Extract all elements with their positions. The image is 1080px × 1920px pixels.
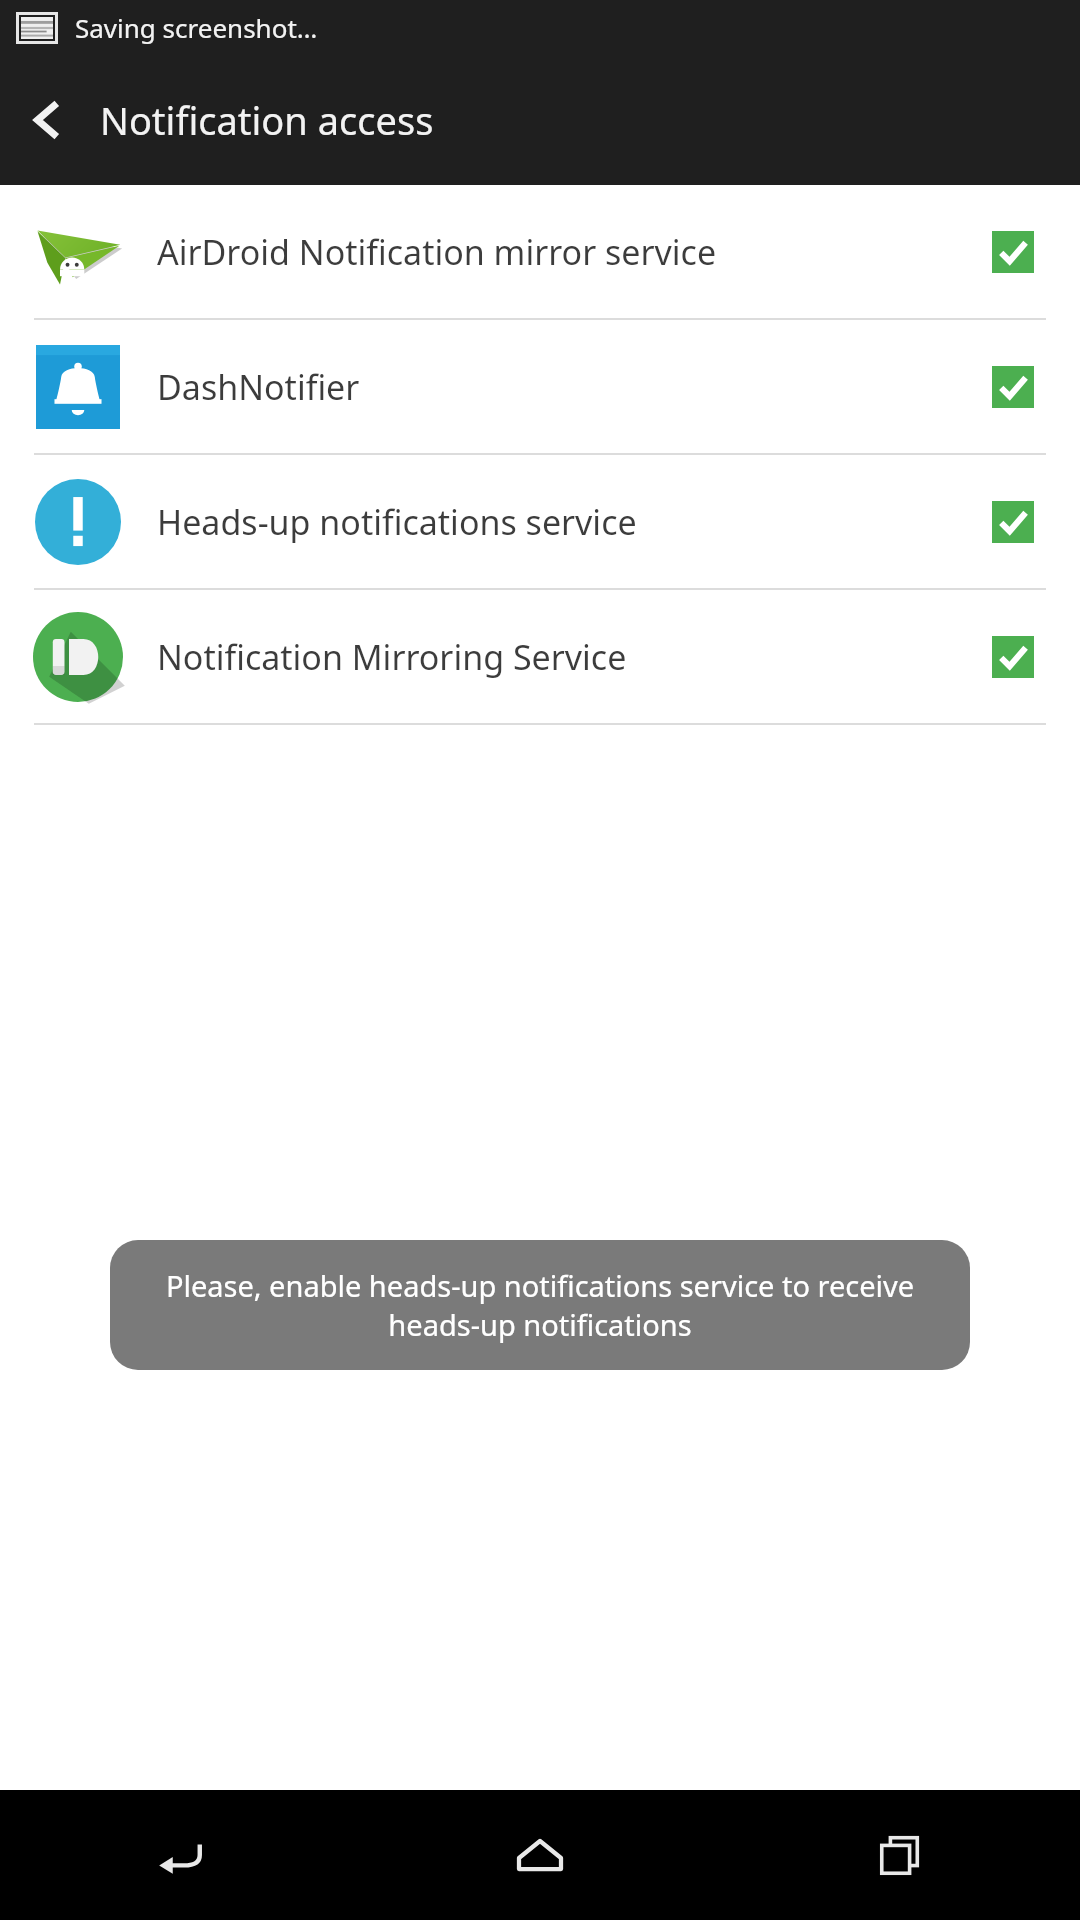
staticText: Please, enable heads-up notifications se… — [150, 1266, 930, 1344]
button[interactable]: Enabled — [992, 636, 1034, 678]
staticText: AirDroid Notification mirror service — [157, 229, 992, 275]
staticText: Saving screenshot… — [75, 10, 318, 45]
button[interactable]: Home — [360, 1790, 720, 1920]
button[interactable]: Notification Mirroring Service — [0, 590, 1080, 723]
button[interactable]: Enabled — [992, 231, 1034, 273]
button[interactable]: Back — [0, 72, 96, 168]
button[interactable]: Heads-up notifications service — [0, 455, 1080, 588]
staticText: Notification access — [100, 94, 434, 146]
button[interactable]: Enabled — [992, 366, 1034, 408]
button[interactable]: Enabled — [992, 501, 1034, 543]
staticText: DashNotifier — [157, 364, 992, 410]
button[interactable]: Recent apps — [720, 1790, 1080, 1920]
button[interactable]: AirDroid Notification mirror service — [0, 185, 1080, 318]
staticText: Notification Mirroring Service — [157, 634, 992, 680]
button[interactable]: DashNotifier — [0, 320, 1080, 453]
button[interactable]: Back — [0, 1790, 360, 1920]
staticText: Heads-up notifications service — [157, 499, 992, 545]
